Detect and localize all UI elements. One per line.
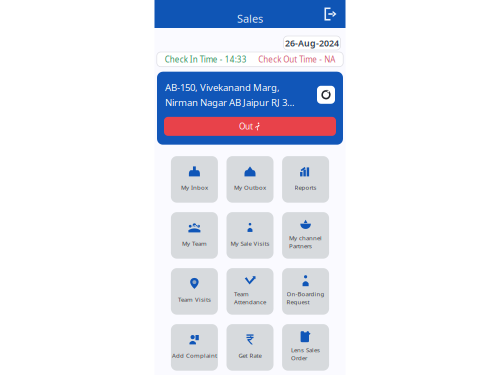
staticText: Reports [295,183,317,191]
button[interactable]: My Outbox [226,156,273,203]
button[interactable]: Out [164,117,336,136]
staticText: Nirman Nagar AB Jaipur RJ 3… [165,96,295,109]
staticText: Sales [237,11,263,26]
button[interactable]: My Inbox [171,156,218,203]
staticText: My channel Partners [289,234,322,250]
staticText: Add Complaint [172,351,217,359]
staticText: Team Attendance [234,290,266,306]
staticText: My Sale Visits [230,239,269,247]
staticText: On-Boarding Request [287,290,325,306]
button[interactable]: Reports [282,156,329,203]
button[interactable]: My channel Partners [282,212,329,259]
staticText: My Outbox [234,183,266,191]
button[interactable]: Get Rate [226,324,273,371]
button[interactable]: On-Boarding Request [282,268,329,315]
staticText: AB-150, Vivekanand Marg, [165,81,280,94]
staticText: My Inbox [181,183,208,191]
button[interactable]: My Team [171,212,218,259]
staticText: Team Visits [178,295,211,303]
button[interactable]: Log out [321,4,339,23]
staticText: Check Out Time - NA [258,54,335,65]
staticText: Check In Time - 14:33 [165,54,247,65]
button[interactable]: Add Complaint [171,324,218,371]
button[interactable]: Lens Sales Order [282,324,329,371]
staticText: Get Rate [238,351,261,359]
button[interactable]: Team Visits [171,268,218,315]
staticText: Lens Sales Order [291,346,320,362]
button[interactable]: Refresh location [317,86,335,104]
button[interactable]: 26-Aug-2024 [283,36,340,50]
button[interactable]: Team Attendance [226,268,273,315]
button[interactable]: My Sale Visits [226,212,273,259]
staticText: 26-Aug-2024 [285,37,339,49]
staticText: My Team [182,239,207,247]
staticText: Out [239,121,253,132]
